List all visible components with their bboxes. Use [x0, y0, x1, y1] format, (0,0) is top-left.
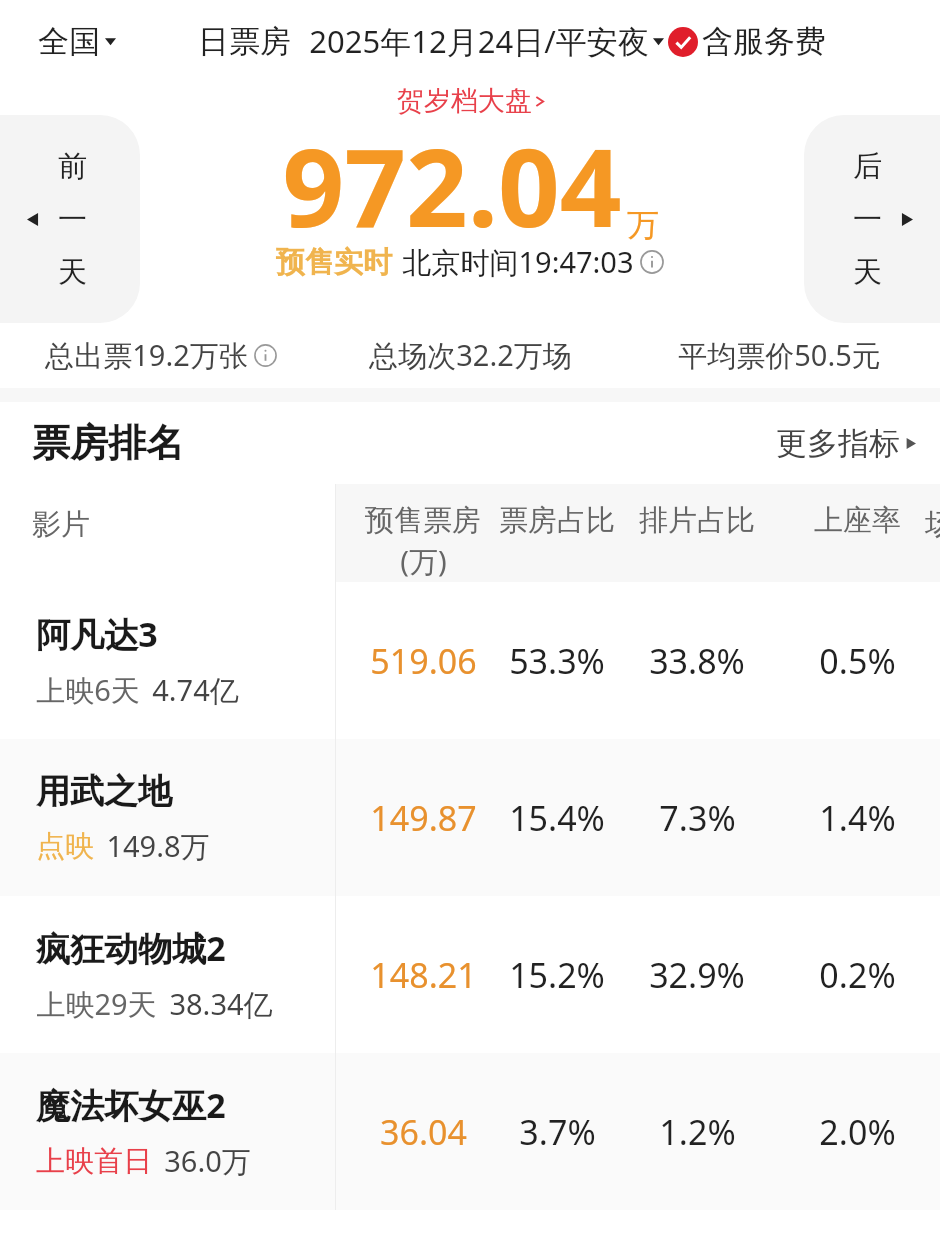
staticText: 后 — [853, 148, 882, 185]
staticText: 0.2% — [819, 952, 896, 998]
staticText: 魔法坏女巫2 — [36, 1082, 226, 1128]
button[interactable]: 魔法坏女巫2 — [0, 1053, 940, 1210]
staticText: (万) — [400, 541, 447, 581]
button[interactable]: 预售票房 — [343, 502, 503, 581]
button[interactable]: 更多指标 — [776, 424, 916, 463]
staticText: 影片 — [32, 506, 90, 543]
staticText: 15.4% — [509, 795, 605, 841]
button[interactable]: 总场次32.2万场 — [316, 335, 625, 375]
staticText: 平均票价50.5元 — [678, 335, 881, 375]
staticText: 北京时间19:47:03 — [402, 242, 634, 282]
button[interactable]: 排片占比 — [617, 502, 777, 539]
button[interactable]: 总出票19.2万张 — [6, 335, 316, 375]
staticText: 7.3% — [659, 795, 736, 841]
staticText: 38.34亿 — [169, 984, 273, 1024]
other: 说明 — [640, 250, 664, 274]
button[interactable]: 后一天 — [804, 115, 940, 323]
button[interactable]: 票房占比 — [477, 502, 637, 539]
button[interactable]: 疯狂动物城2 — [0, 896, 940, 1053]
button[interactable]: 阿凡达3 — [0, 582, 940, 739]
staticText: 前 — [58, 148, 87, 185]
staticText: 上映首日 — [36, 1143, 152, 1180]
staticText: 149.8万 — [106, 826, 210, 866]
staticText: 预售票房 — [365, 502, 481, 539]
staticText: 票房占比 — [499, 502, 615, 539]
other: 含服务费 — [668, 27, 698, 57]
staticText: 万 — [627, 205, 659, 245]
staticText: 点映 — [36, 828, 94, 865]
staticText: 日票房 — [198, 22, 291, 61]
staticText: 更多指标 — [776, 424, 900, 463]
staticText: 2025年12月24日/平安夜 — [309, 20, 649, 62]
staticText: 148.21 — [370, 952, 477, 998]
staticText: 上映29天 — [36, 984, 157, 1024]
staticText: 2.0% — [819, 1109, 896, 1155]
staticText: 上映6天 — [36, 670, 140, 710]
staticText: 阿凡达3 — [36, 611, 158, 657]
staticText: 用武之地 — [36, 770, 172, 813]
staticText: 上座率 — [814, 502, 901, 539]
staticText: 33.8% — [649, 638, 745, 684]
button[interactable]: 全国 — [38, 22, 116, 61]
staticText: 预售实时 — [276, 244, 392, 281]
button[interactable]: 贺岁档大盘 — [397, 84, 544, 118]
staticText: 519.06 — [370, 638, 477, 684]
staticText: 排片占比 — [639, 502, 755, 539]
staticText: 4.74亿 — [152, 670, 239, 710]
staticText: 含服务费 — [702, 22, 826, 61]
staticText: 一 — [58, 201, 87, 238]
staticText: 天 — [853, 254, 882, 291]
staticText: 972.04 — [282, 112, 622, 259]
button[interactable]: 平均票价50.5元 — [625, 335, 934, 375]
staticText: 53.3% — [509, 638, 605, 684]
staticText: 总出票19.2万张 — [45, 335, 248, 375]
staticText: 疯狂动物城2 — [36, 925, 226, 971]
staticText: 贺岁档大盘 — [397, 84, 532, 118]
button[interactable]: 上座率 — [777, 502, 937, 539]
staticText: 0.5% — [819, 638, 896, 684]
staticText: 15.2% — [509, 952, 605, 998]
staticText: 总场次32.2万场 — [369, 335, 572, 375]
staticText: 36.0万 — [164, 1141, 251, 1181]
staticText: 天 — [58, 254, 87, 291]
button[interactable]: 日票房 — [198, 22, 291, 61]
staticText: 1.2% — [659, 1109, 736, 1155]
staticText: 票房排名 — [32, 419, 184, 467]
staticText: 36.04 — [380, 1109, 467, 1155]
button[interactable]: 2025年12月24日/平安夜 — [309, 20, 664, 62]
button[interactable]: 含服务费 — [668, 22, 826, 61]
button[interactable]: 用武之地 — [0, 739, 940, 896]
staticText: 1.4% — [819, 795, 896, 841]
other: 说明 — [254, 344, 277, 367]
staticText: 32.9% — [649, 952, 745, 998]
staticText: 全国 — [38, 22, 100, 61]
staticText: 一 — [853, 201, 882, 238]
button[interactable]: 前一天 — [0, 115, 140, 323]
staticText: 场 — [925, 506, 940, 543]
staticText: 149.87 — [370, 795, 477, 841]
staticText: 3.7% — [519, 1109, 596, 1155]
